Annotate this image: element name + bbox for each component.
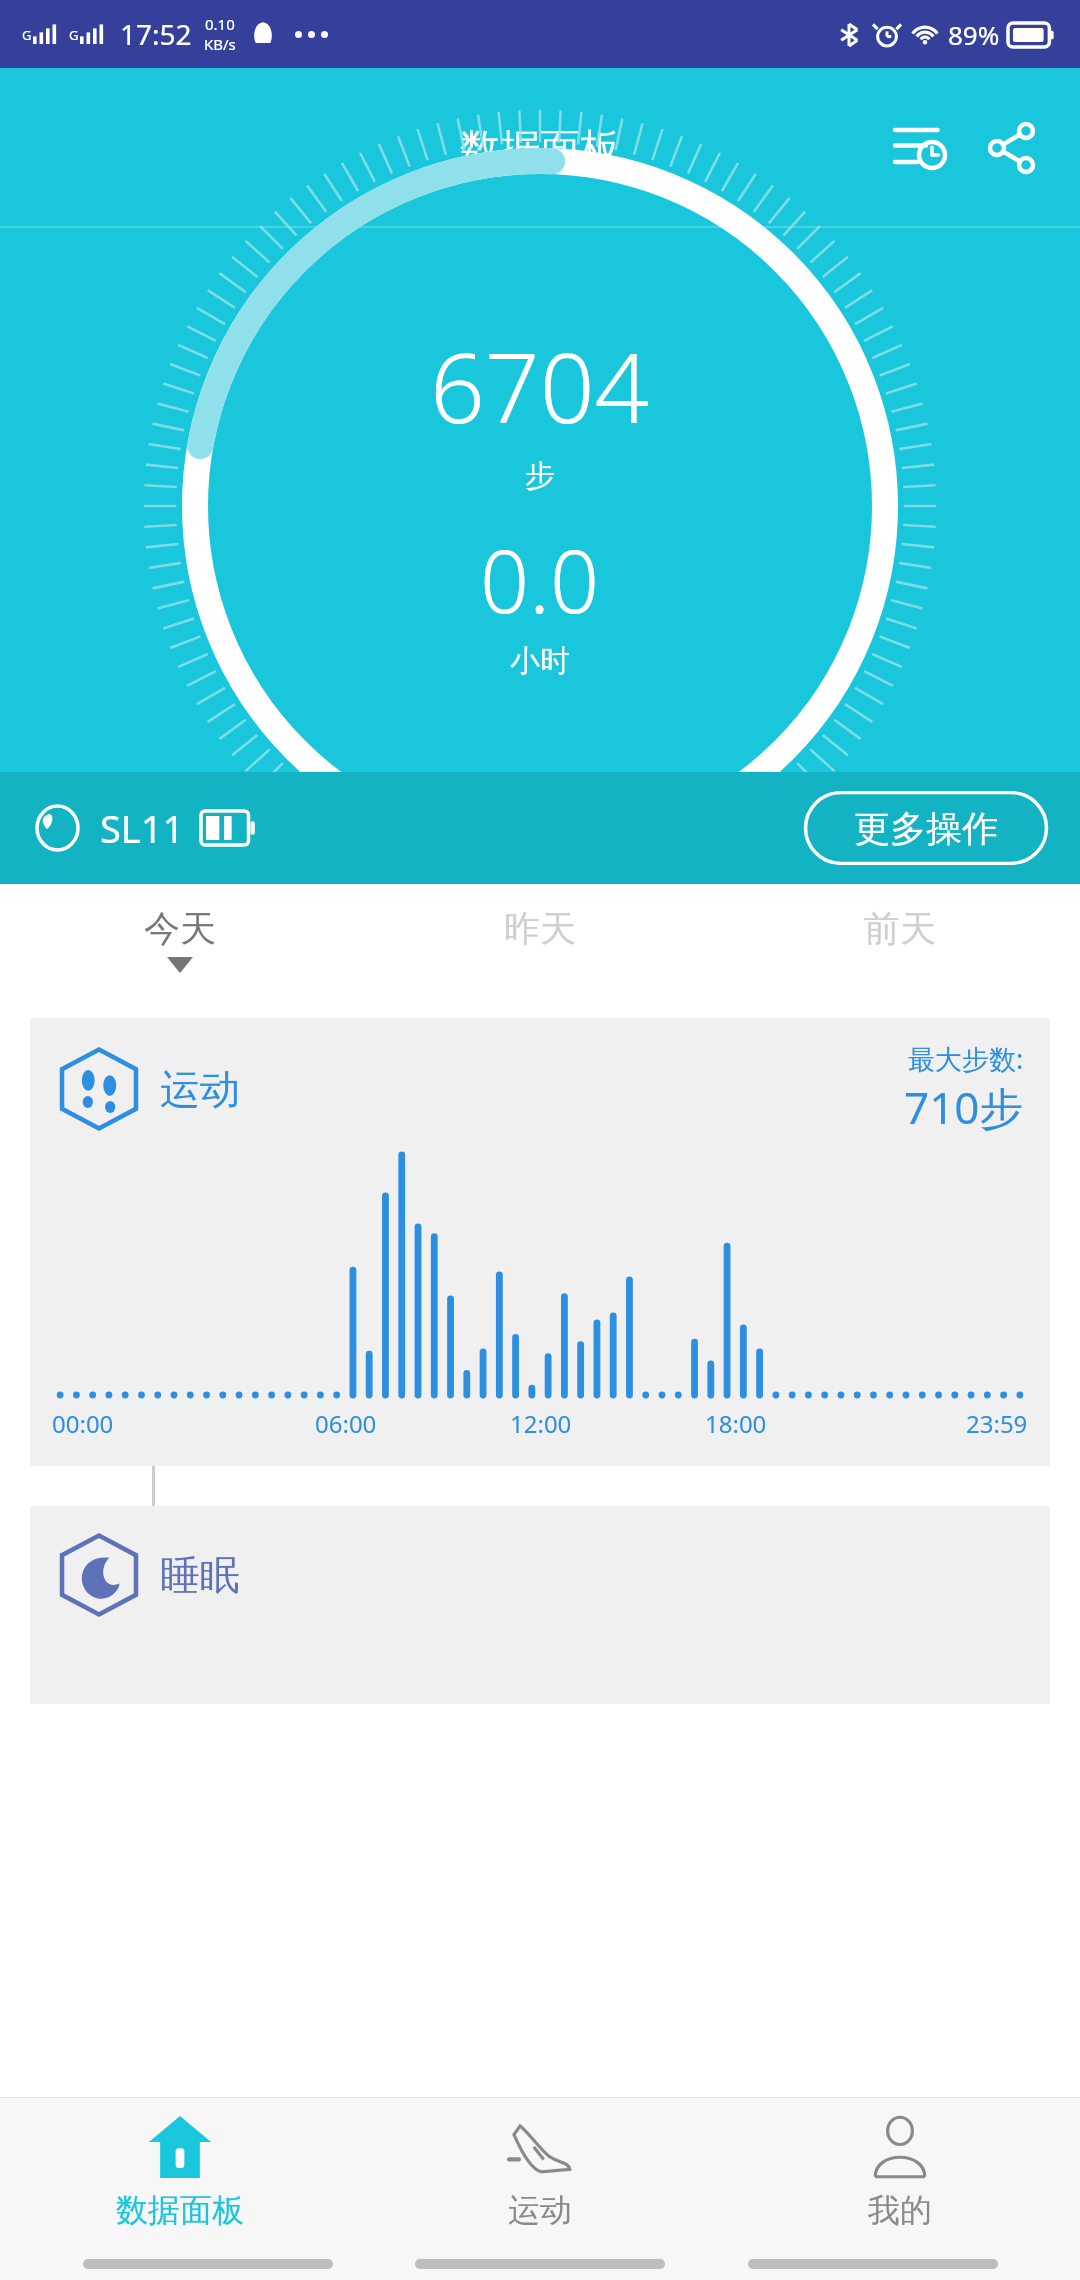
staticText: 睡眠 <box>160 1550 240 1600</box>
staticText: 步 <box>525 457 555 495</box>
staticText: 小时 <box>510 642 570 680</box>
staticText: 更多操作 <box>854 806 998 851</box>
staticText: KB/s <box>204 34 236 54</box>
button[interactable]: 运动 <box>360 2098 720 2248</box>
staticText: SL11 <box>100 802 185 854</box>
staticText: 今天 <box>144 906 216 951</box>
staticText: 23:59 <box>966 1407 1028 1440</box>
staticText: 昨天 <box>504 906 576 951</box>
staticText: 前天 <box>864 906 936 951</box>
staticText: G <box>69 26 79 44</box>
staticText: 00:00 <box>52 1407 114 1440</box>
button[interactable]: 昨天 <box>360 884 720 1010</box>
button[interactable]: Share <box>974 110 1050 186</box>
staticText: 17:52 <box>120 15 192 53</box>
staticText: 6704 <box>430 320 650 451</box>
staticText: 12:00 <box>510 1407 572 1440</box>
button[interactable]: 前天 <box>720 884 1080 1010</box>
staticText: 0.0 <box>480 521 600 638</box>
staticText: 89% <box>948 17 1000 52</box>
button[interactable]: History <box>882 110 958 186</box>
button[interactable]: 运动 <box>30 1018 1050 1466</box>
button[interactable]: 今天 <box>0 884 360 1010</box>
staticText: 06:00 <box>315 1407 377 1440</box>
staticText: 710步 <box>904 1077 1024 1137</box>
button[interactable]: 我的 <box>720 2098 1080 2248</box>
button[interactable]: 更多操作 <box>802 791 1050 865</box>
staticText: 最大步数: <box>908 1040 1024 1077</box>
staticText: 数据面板 <box>460 123 620 173</box>
staticText: G <box>22 26 32 44</box>
staticText: 运动 <box>160 1064 240 1114</box>
button[interactable]: 数据面板 <box>0 2098 360 2248</box>
staticText: 0.10 <box>205 14 235 34</box>
staticText: 18:00 <box>705 1407 767 1440</box>
staticText: 运动 <box>508 2190 572 2230</box>
button[interactable]: 睡眠 <box>30 1506 1050 1704</box>
staticText: 数据面板 <box>116 2190 244 2230</box>
staticText: 我的 <box>868 2190 932 2230</box>
